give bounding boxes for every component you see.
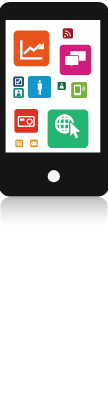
button[interactable]: Smartphone with apps xyxy=(0,0,108,400)
